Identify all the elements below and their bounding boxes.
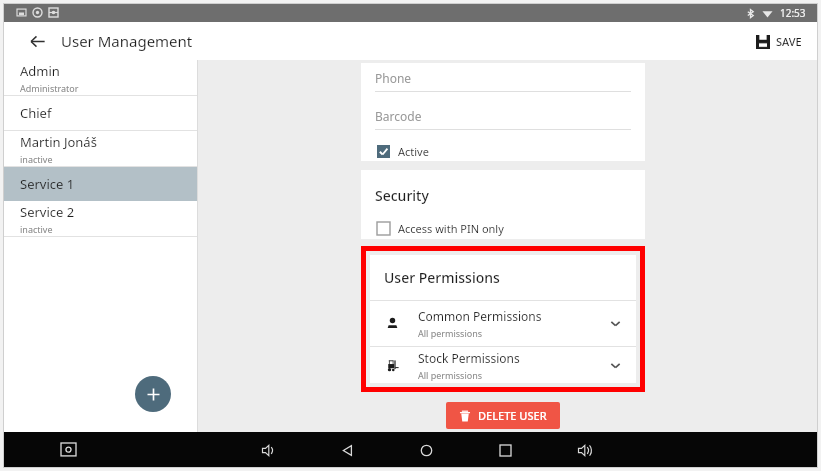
- button[interactable]: Chief: [3, 96, 198, 130]
- staticText: Barcode: [375, 108, 422, 124]
- button[interactable]: DELETE USER: [446, 402, 560, 429]
- staticText: Service 2: [20, 203, 75, 221]
- button[interactable]: Access with PIN only: [375, 219, 506, 238]
- staticText: Phone: [375, 70, 412, 86]
- staticText: Service 1: [20, 175, 75, 193]
- button[interactable]: Common Permissions: [370, 301, 636, 346]
- button[interactable]: Service 1: [3, 167, 198, 201]
- staticText: User Permissions: [384, 268, 500, 287]
- button[interactable]: Screenshot: [55, 437, 81, 463]
- staticText: Martin Jonáš: [20, 133, 97, 151]
- staticText: All permissions: [418, 327, 483, 339]
- staticText: Access with PIN only: [398, 221, 504, 236]
- staticText: inactive: [20, 223, 53, 235]
- button[interactable]: Martin Jonáš: [3, 131, 198, 166]
- staticText: inactive: [20, 153, 53, 165]
- staticText: Admin: [20, 62, 60, 80]
- staticText: SAVE: [776, 34, 802, 49]
- staticText: Active: [398, 144, 429, 159]
- staticText: Administrator: [20, 82, 79, 94]
- staticText: Chief: [20, 104, 52, 122]
- staticText: Stock Permissions: [418, 350, 520, 366]
- button[interactable]: Add user: [135, 376, 171, 412]
- staticText: 12:53: [780, 6, 806, 20]
- button[interactable]: Recents: [491, 436, 519, 464]
- staticText: Common Permissions: [418, 308, 542, 324]
- staticText: DELETE USER: [478, 408, 547, 423]
- button[interactable]: Stock Permissions: [370, 347, 636, 383]
- button[interactable]: Volume up: [570, 436, 598, 464]
- button[interactable]: Back: [23, 27, 51, 55]
- staticText: User Management: [61, 31, 193, 51]
- button[interactable]: Active: [375, 142, 431, 161]
- button[interactable]: Service 2: [3, 201, 198, 236]
- button[interactable]: Home: [412, 436, 440, 464]
- staticText: Security: [375, 186, 429, 205]
- button[interactable]: Volume down: [254, 436, 282, 464]
- button[interactable]: Admin: [3, 60, 198, 95]
- staticText: All permissions: [418, 369, 483, 381]
- button[interactable]: Back: [333, 436, 361, 464]
- button[interactable]: SAVE: [752, 30, 806, 53]
